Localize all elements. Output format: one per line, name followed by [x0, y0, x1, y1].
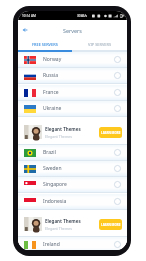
staticText: Servers	[63, 27, 82, 34]
staticText: LEARN MORE	[101, 223, 121, 227]
staticText: Ukraine	[43, 105, 62, 112]
button[interactable]: Back	[20, 25, 30, 35]
button[interactable]: Singapore	[18, 177, 127, 192]
button[interactable]: LEARN MORE	[99, 127, 122, 138]
staticText: 10:14 AM	[22, 14, 36, 18]
staticText: FREE SERVERS	[32, 42, 58, 47]
staticText: Elegant Themes	[45, 218, 81, 224]
button[interactable]: Indonesia	[18, 194, 127, 209]
staticText: Russia	[43, 72, 59, 79]
button[interactable]: Ukraine	[18, 101, 127, 116]
staticText: Elegant Themes	[45, 126, 81, 132]
button[interactable]: LEARN MORE	[99, 219, 122, 230]
button[interactable]: Norway	[18, 52, 127, 67]
staticText: VIP SERVERS	[88, 42, 112, 47]
button[interactable]: FREE SERVERS	[18, 39, 72, 50]
staticText: France	[43, 89, 59, 96]
staticText: Elegant Themes	[45, 226, 72, 231]
button[interactable]: France	[18, 85, 127, 100]
staticText: 30kB/s	[77, 14, 88, 18]
button[interactable]: VIP SERVERS	[72, 39, 127, 50]
staticText: Norway	[43, 56, 62, 63]
staticText: Sweden	[43, 165, 62, 172]
button[interactable]: Ireland	[18, 237, 127, 250]
staticText: Elegant Themes	[45, 134, 72, 139]
staticText: Singapore	[43, 181, 67, 188]
button[interactable]: Sweden	[18, 161, 127, 176]
button[interactable]: Brazil	[18, 145, 127, 160]
staticText: LEARN MORE	[101, 131, 121, 135]
button[interactable]: Russia	[18, 68, 127, 83]
staticText: Indonesia	[43, 198, 67, 205]
staticText: Ireland	[43, 241, 60, 248]
staticText: Brazil	[43, 149, 56, 156]
